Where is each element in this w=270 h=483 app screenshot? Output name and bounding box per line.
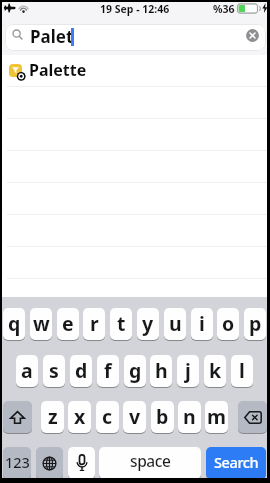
button[interactable]: z (41, 401, 64, 433)
staticText: x (74, 403, 86, 430)
staticText: q (8, 310, 21, 337)
staticText: w (33, 310, 50, 337)
staticText: y (142, 310, 154, 337)
staticText: t (117, 310, 126, 337)
button[interactable]: u (164, 308, 186, 340)
staticText: j (185, 357, 191, 384)
button[interactable]: o (217, 308, 239, 340)
staticText: p (249, 310, 262, 337)
button[interactable]: m (205, 401, 228, 433)
button[interactable]: r (83, 308, 105, 340)
button[interactable] (36, 447, 63, 479)
button[interactable]: a (16, 355, 38, 387)
staticText: f (104, 357, 112, 384)
staticText: o (222, 310, 235, 337)
staticText: b (156, 403, 169, 430)
button[interactable]: n (178, 401, 201, 433)
staticText: k (209, 357, 222, 384)
button[interactable]: Search (206, 447, 266, 479)
staticText: l (239, 357, 245, 384)
button[interactable]: l (231, 355, 253, 387)
button[interactable]: q (3, 308, 25, 340)
staticText: h (155, 357, 168, 384)
button[interactable]: h (150, 355, 172, 387)
staticText: r (90, 310, 99, 337)
button[interactable]: e (57, 308, 79, 340)
button[interactable]: 123 (3, 447, 31, 479)
staticText: d (75, 357, 88, 384)
button[interactable]: i (191, 308, 213, 340)
button[interactable]: d (70, 355, 92, 387)
staticText: z (48, 403, 58, 430)
staticText: 19 Sep - 12:46 (100, 2, 170, 16)
button[interactable]: c (96, 401, 119, 433)
staticText: v (129, 403, 141, 430)
staticText: g (129, 357, 142, 384)
button[interactable] (3, 401, 32, 433)
staticText: Palet (30, 25, 74, 48)
button[interactable]: t (110, 308, 132, 340)
button[interactable]: x (68, 401, 91, 433)
button[interactable]: s (43, 355, 65, 387)
button[interactable]: j (177, 355, 199, 387)
button[interactable]: p (244, 308, 266, 340)
button[interactable]: k (204, 355, 226, 387)
staticText: Palette (29, 59, 87, 81)
staticText: m (207, 403, 227, 430)
button[interactable]: space (99, 447, 201, 479)
staticText: c (102, 403, 113, 430)
button[interactable] (5, 24, 266, 51)
staticText: %36 (213, 2, 235, 16)
staticText: Search (214, 452, 259, 472)
button[interactable] (0, 55, 270, 86)
button[interactable]: g (124, 355, 146, 387)
staticText: a (21, 357, 33, 384)
button[interactable]: b (151, 401, 174, 433)
staticText: s (49, 357, 59, 384)
staticText: e (62, 310, 74, 337)
staticText: space (130, 450, 171, 471)
button[interactable] (68, 447, 95, 479)
button[interactable] (238, 401, 267, 433)
staticText: 123 (5, 452, 30, 472)
staticText: u (169, 310, 182, 337)
staticText: n (183, 403, 196, 430)
button[interactable]: f (97, 355, 119, 387)
staticText: i (199, 310, 205, 337)
button[interactable]: y (137, 308, 159, 340)
button[interactable]: v (123, 401, 146, 433)
button[interactable]: w (30, 308, 52, 340)
